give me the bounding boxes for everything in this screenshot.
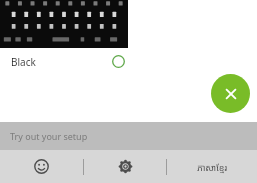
- button[interactable]: [0, 0, 128, 48]
- button[interactable]: Settings: [84, 150, 166, 183]
- button[interactable]: Try out your setup: [0, 122, 257, 150]
- staticText: ភាសាខ្មែរ: [197, 161, 228, 173]
- staticText: Try out your setup: [10, 130, 88, 142]
- button[interactable]: Black: [0, 48, 257, 75]
- staticText: Black: [11, 55, 36, 69]
- button[interactable]: ភាសាខ្មែរ: [167, 150, 257, 183]
- button[interactable]: Close: [211, 74, 250, 113]
- button[interactable]: Emoji: [0, 150, 83, 183]
